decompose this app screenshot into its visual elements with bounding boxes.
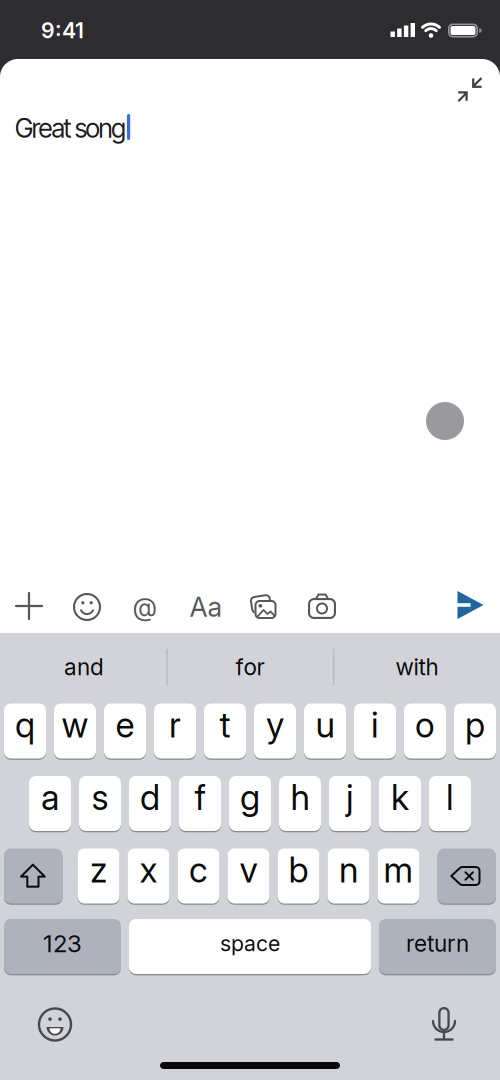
button[interactable]: Camera [300, 585, 344, 629]
button[interactable]: g [229, 775, 271, 832]
button[interactable]: f [179, 775, 221, 832]
button[interactable]: z [77, 847, 119, 904]
staticText: t [219, 705, 230, 745]
staticText: a [41, 777, 59, 818]
button[interactable]: p [454, 702, 496, 759]
button[interactable]: k [379, 775, 421, 832]
button[interactable]: i [354, 702, 396, 759]
staticText: j [346, 777, 354, 818]
button[interactable]: o [404, 702, 446, 759]
staticText: n [339, 850, 358, 890]
staticText: return [406, 930, 469, 957]
button[interactable]: Delete [437, 847, 496, 904]
button[interactable]: for [170, 642, 330, 692]
staticText: v [239, 850, 257, 890]
staticText: r [169, 705, 181, 745]
button[interactable]: Dictation [422, 1003, 466, 1047]
button[interactable]: Add attachment [7, 584, 51, 628]
button[interactable]: m [377, 847, 419, 904]
button[interactable]: s [79, 775, 121, 832]
button[interactable]: e [104, 702, 146, 759]
staticText: c [189, 850, 208, 890]
staticText: w [61, 705, 88, 745]
staticText: f [194, 777, 205, 818]
staticText: i [371, 705, 379, 745]
staticText: Aa [189, 591, 222, 623]
staticText: o [415, 705, 435, 745]
button[interactable]: n [327, 847, 369, 904]
button[interactable]: with [337, 642, 497, 692]
button[interactable]: Emoji [33, 1003, 77, 1047]
button[interactable]: h [279, 775, 321, 832]
button[interactable]: a [29, 775, 71, 832]
staticText: x [139, 850, 157, 890]
staticText: b [288, 850, 308, 890]
staticText: with [395, 654, 438, 680]
button[interactable]: Text formatting [184, 585, 228, 629]
staticText: Great song [15, 112, 126, 144]
staticText: z [90, 850, 107, 890]
staticText: p [465, 705, 485, 745]
staticText: q [15, 705, 35, 745]
staticText: and [64, 654, 104, 680]
staticText: for [235, 654, 264, 680]
button[interactable]: u [304, 702, 346, 759]
button[interactable]: y [254, 702, 296, 759]
button[interactable]: Mention [123, 585, 167, 629]
staticText: m [383, 850, 413, 890]
button[interactable]: t [204, 702, 246, 759]
button[interactable]: Emoji [65, 585, 109, 629]
staticText: 123 [43, 929, 82, 958]
button[interactable]: 123 [4, 918, 121, 975]
button[interactable]: j [329, 775, 371, 832]
button[interactable]: and [4, 642, 164, 692]
staticText: y [266, 705, 284, 745]
staticText: g [240, 777, 260, 818]
staticText: 9:41 [41, 18, 84, 43]
button[interactable]: r [154, 702, 196, 759]
staticText: d [140, 777, 160, 818]
staticText: space [220, 931, 280, 956]
button[interactable]: w [54, 702, 96, 759]
button[interactable]: d [129, 775, 171, 832]
button[interactable]: space [129, 918, 371, 975]
button[interactable]: b [277, 847, 319, 904]
staticText: h [290, 777, 309, 818]
staticText: l [446, 777, 454, 818]
staticText: e [115, 705, 134, 745]
staticText: k [391, 777, 409, 818]
button[interactable]: Shift [4, 847, 62, 904]
button[interactable]: v [227, 847, 269, 904]
staticText: u [315, 705, 334, 745]
button[interactable]: x [127, 847, 169, 904]
button[interactable]: Send [447, 583, 491, 627]
button[interactable]: Collapse [448, 67, 492, 111]
button[interactable]: return [379, 918, 496, 975]
button[interactable]: l [429, 775, 471, 832]
staticText: s [91, 777, 108, 818]
button[interactable]: Photos [242, 585, 286, 629]
button[interactable]: q [4, 702, 46, 759]
staticText: @ [132, 592, 157, 622]
button[interactable]: c [177, 847, 219, 904]
